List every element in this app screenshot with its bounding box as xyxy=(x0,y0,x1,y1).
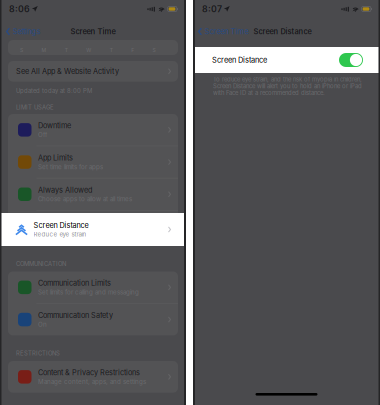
staticText: COMMUNICATION xyxy=(16,260,66,267)
staticText: See All App & Website Activity xyxy=(16,67,119,75)
button[interactable]: Screen Distance xyxy=(339,53,363,67)
staticText: On xyxy=(38,321,47,328)
staticText: T xyxy=(110,47,113,53)
staticText: Manage content, apps, and settings xyxy=(38,378,146,385)
staticText: Set time limits for apps xyxy=(38,163,103,170)
button[interactable]: Settings xyxy=(0,24,46,39)
staticText: Content & Privacy Restrictions xyxy=(38,368,140,377)
button[interactable]: App Limits xyxy=(8,146,178,178)
button[interactable]: Downtime xyxy=(8,114,178,146)
staticText: M xyxy=(41,47,46,53)
staticText: S xyxy=(153,47,156,53)
staticText: Settings xyxy=(12,27,40,36)
staticText: Screen Distance xyxy=(212,56,267,64)
staticText: Always Allowed xyxy=(38,186,92,194)
staticText: Choose apps to allow at all times xyxy=(38,196,132,203)
button[interactable]: See All App & Website Activity xyxy=(8,61,178,82)
staticText: Communication Limits xyxy=(38,279,111,287)
button[interactable]: Content & Privacy Restrictions xyxy=(8,361,178,393)
staticText: S xyxy=(20,47,23,53)
staticText: Off xyxy=(38,131,47,138)
staticText: Screen Distance xyxy=(38,218,93,226)
staticText: Updated today at 8:00 PM xyxy=(16,87,92,94)
button[interactable]: Communication Safety xyxy=(8,304,178,335)
staticText: T xyxy=(65,47,68,53)
staticText: 8:06 xyxy=(9,4,30,14)
staticText: Screen Time xyxy=(204,27,248,36)
button[interactable]: Screen Distance xyxy=(8,211,178,242)
staticText: Set limits for calling and messaging xyxy=(38,289,139,296)
staticText: Screen Distance xyxy=(33,221,88,229)
staticText: To reduce eye strain, and the risk of my… xyxy=(213,76,362,96)
button[interactable]: Communication Limits xyxy=(8,271,178,303)
staticText: RESTRICTIONS xyxy=(16,350,60,357)
staticText: Screen Time xyxy=(70,27,115,36)
staticText: Screen Distance xyxy=(253,27,311,36)
staticText: F xyxy=(131,47,134,53)
button[interactable]: Screen Time xyxy=(193,24,253,39)
staticText: W xyxy=(86,47,91,53)
staticText: 8:07 xyxy=(202,4,222,14)
staticText: Reduce eye strain xyxy=(38,228,91,235)
staticText: App Limits xyxy=(38,154,73,162)
button[interactable]: Always Allowed xyxy=(8,178,178,210)
staticText: Reduce eye strain xyxy=(33,231,86,238)
staticText: Downtime xyxy=(38,121,71,130)
button[interactable]: Screen Distance xyxy=(0,213,186,246)
staticText: Communication Safety xyxy=(38,311,113,320)
staticText: LIMIT USAGE xyxy=(16,104,54,111)
